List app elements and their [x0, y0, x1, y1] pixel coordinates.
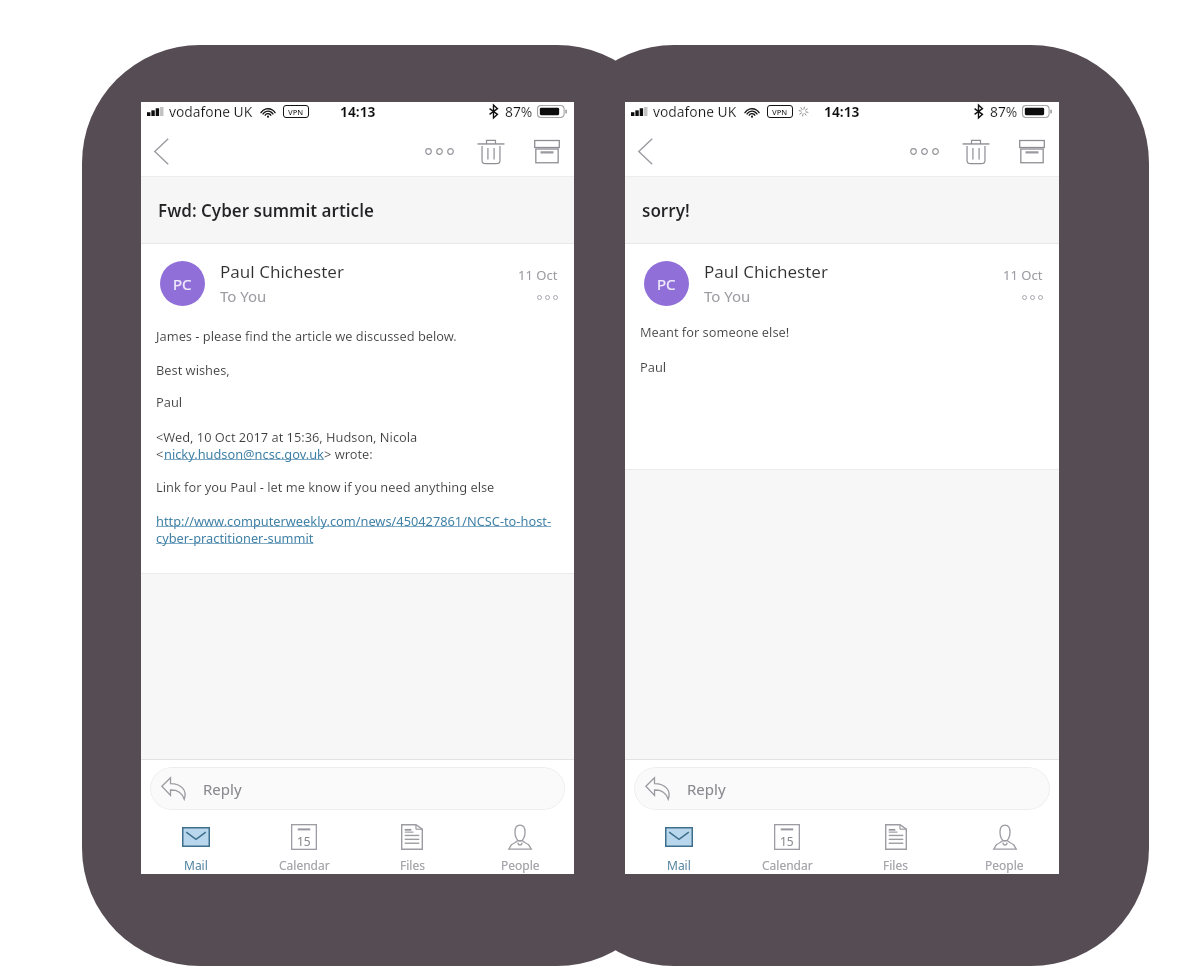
staticText: Paul: [156, 393, 183, 410]
button[interactable]: More options: [901, 128, 947, 174]
staticText: Best wishes,: [156, 361, 230, 378]
staticText: 14:13: [340, 102, 376, 121]
button[interactable]: Reply: [634, 767, 1050, 810]
staticText: PC: [173, 274, 192, 294]
staticText: Paul Chichester: [220, 260, 344, 283]
button[interactable]: Archive: [524, 128, 570, 174]
button[interactable]: Delete: [953, 128, 999, 174]
staticText: 11 Oct: [1003, 266, 1043, 284]
button[interactable]: Back: [625, 127, 665, 175]
staticText: 11 Oct: [518, 266, 558, 284]
button[interactable]: People: [466, 817, 574, 874]
button[interactable]: Archive: [1009, 128, 1055, 174]
staticText: Files: [883, 857, 908, 873]
staticText: nicky.hudson@ncsc.gov.uk: [164, 445, 324, 462]
staticText: James - please find the article we discu…: [156, 327, 457, 344]
staticText: Calendar: [762, 857, 813, 873]
staticText: 87%: [505, 102, 533, 121]
staticText: To You: [704, 286, 751, 306]
staticText: Meant for someone else!: [640, 323, 790, 340]
staticText: Reply: [203, 779, 242, 799]
staticText: Fwd: Cyber summit article: [158, 199, 374, 222]
staticText: Paul Chichester: [704, 260, 828, 283]
staticText: Mail: [667, 857, 691, 873]
staticText: Reply: [687, 779, 726, 799]
staticText: VPN: [288, 107, 304, 117]
button[interactable]: Delete: [468, 128, 514, 174]
staticText: People: [501, 857, 540, 873]
staticText: > wrote:: [324, 445, 373, 462]
button[interactable]: People: [950, 817, 1059, 874]
staticText: vodafone UK: [653, 102, 737, 121]
staticText: Calendar: [279, 857, 330, 873]
button[interactable]: 15: [733, 817, 841, 874]
staticText: Paul: [640, 358, 667, 375]
staticText: 15: [780, 833, 794, 849]
staticText: sorry!: [642, 199, 690, 222]
staticText: 14:13: [824, 102, 860, 121]
staticText: 15: [297, 833, 311, 849]
button[interactable]: Mail: [141, 817, 250, 874]
staticText: Link for you Paul - let me know if you n…: [156, 478, 495, 495]
staticText: cyber-practitioner-summit: [156, 529, 314, 546]
button[interactable]: Reply: [150, 767, 565, 810]
staticText: vodafone UK: [169, 102, 253, 121]
staticText: People: [985, 857, 1024, 873]
button[interactable]: More options: [416, 128, 462, 174]
staticText: <: [156, 445, 164, 462]
staticText: Mail: [184, 857, 208, 873]
staticText: 87%: [990, 102, 1018, 121]
button[interactable]: Back: [141, 127, 181, 175]
staticText: PC: [657, 274, 676, 294]
staticText: VPN: [772, 107, 788, 117]
button[interactable]: Files: [841, 817, 950, 874]
button[interactable]: Mail: [625, 817, 733, 874]
staticText: http://www.computerweekly.com/news/45042…: [156, 512, 552, 529]
staticText: Files: [400, 857, 425, 873]
staticText: To You: [220, 286, 267, 306]
button[interactable]: Files: [358, 817, 466, 874]
staticText: <Wed, 10 Oct 2017 at 15:36, Hudson, Nico…: [156, 428, 418, 445]
button[interactable]: 15: [250, 817, 358, 874]
